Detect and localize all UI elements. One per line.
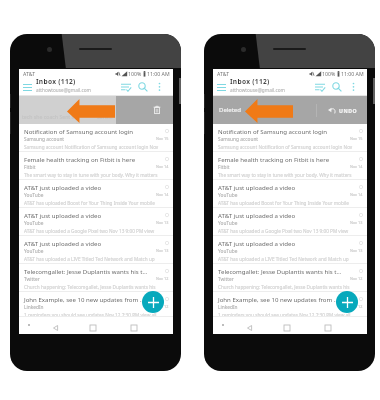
button[interactable]: Open navigation drawer: [19, 78, 36, 96]
staticText: Female health tracking on Fitbit is here: [218, 155, 330, 163]
staticText: AT&T has uploaded a LIVE Titled Ted Netw…: [24, 256, 155, 262]
staticText: The smart way to stay in tune with your …: [218, 172, 352, 178]
button[interactable]: Compose: [336, 291, 358, 313]
staticText: YouTube: [218, 192, 238, 199]
staticText: Twitter: [218, 276, 234, 283]
staticText: LinkedIn: [24, 304, 44, 311]
staticText: atthowtouse@gmail.com: [230, 87, 285, 93]
button[interactable]: Notification of Samsung account login: [19, 124, 173, 152]
staticText: Samsung account Notification of Samsung …: [24, 144, 159, 150]
button[interactable]: Recent apps: [124, 321, 144, 335]
staticText: Samsung account Notification of Samsung …: [218, 144, 353, 150]
staticText: John Example, see 10 new updates from …: [218, 295, 339, 303]
button[interactable]: UNDO: [328, 107, 358, 114]
staticText: AT&T: [23, 70, 36, 77]
staticText: 1 reminders you should see updates Nov 1…: [24, 312, 157, 318]
button[interactable]: More options: [151, 78, 168, 96]
staticText: YouTube: [218, 248, 238, 255]
staticText: AT&T just uploaded a video: [24, 183, 102, 191]
staticText: YouTube: [24, 192, 44, 199]
staticText: AT&T has uploaded Boost for Your Thing I…: [24, 200, 155, 206]
staticText: Notification of Samsung account login: [218, 127, 328, 135]
button[interactable]: Delete: [116, 96, 173, 124]
staticText: Inbox (112): [36, 77, 76, 86]
staticText: 11:00 AM: [341, 70, 364, 77]
staticText: AT&T has uploaded a Google Pixel two Nov…: [24, 228, 155, 234]
button[interactable]: Open navigation drawer: [213, 78, 230, 96]
button[interactable]: AT&T just uploaded a video: [19, 236, 173, 264]
staticText: tech she coach Sent in…: [22, 113, 81, 120]
staticText: Telecomgallet: Jesse Duplantis wants his…: [24, 267, 148, 275]
button[interactable]: Compose: [142, 291, 164, 313]
staticText: Nov 15: [156, 136, 169, 141]
staticText: Female health tracking on Fitbit is here: [24, 155, 136, 163]
button[interactable]: AT&T just uploaded a video: [213, 208, 367, 236]
button[interactable]: More options: [345, 78, 362, 96]
staticText: Twitter: [24, 276, 40, 283]
button[interactable]: Back: [45, 321, 65, 335]
staticText: Fitbit: [218, 164, 230, 171]
staticText: Nov 14: [156, 164, 169, 169]
staticText: Nov 14: [350, 192, 363, 197]
button[interactable]: Back: [239, 321, 259, 335]
button[interactable]: Home: [277, 321, 297, 335]
staticText: Nov 13: [350, 248, 363, 253]
staticText: Fitbit: [24, 164, 36, 171]
staticText: UNDO: [339, 107, 358, 114]
staticText: AT&T just uploaded a video: [218, 183, 296, 191]
staticText: Nov 13: [156, 248, 169, 253]
staticText: 11:00 AM: [147, 70, 170, 77]
staticText: AT&T just uploaded a video: [218, 239, 296, 247]
staticText: Church happening: Telecomgallet, Jesse D…: [24, 284, 156, 290]
staticText: Sens…: [97, 113, 113, 120]
button[interactable]: Telecomgallet: Jesse Duplantis wants his…: [213, 264, 367, 292]
staticText: AT&T: [217, 70, 230, 77]
staticText: AT&T just uploaded a video: [24, 211, 102, 219]
button[interactable]: AT&T just uploaded a video: [213, 180, 367, 208]
button[interactable]: Swipe left to delete: [245, 99, 293, 123]
button[interactable]: Search: [134, 78, 151, 96]
staticText: YouTube: [218, 220, 238, 227]
button[interactable]: Search: [328, 78, 345, 96]
staticText: YouTube: [24, 220, 44, 227]
button[interactable]: Female health tracking on Fitbit is here: [213, 152, 367, 180]
staticText: Deleted: [219, 106, 241, 114]
staticText: Inbox (112): [230, 77, 270, 86]
staticText: AT&T just uploaded a video: [218, 211, 296, 219]
staticText: atthowtouse@gmail.com: [36, 87, 91, 93]
button[interactable]: Sort: [311, 78, 328, 96]
staticText: Telecomgallet: Jesse Duplantis wants his…: [218, 267, 342, 275]
staticText: YouTube: [24, 248, 44, 255]
staticText: The smart way to stay in tune with your …: [24, 172, 158, 178]
staticText: Nov 13: [350, 220, 363, 225]
staticText: John Example, see 10 new updates from …: [24, 295, 145, 303]
button[interactable]: AT&T just uploaded a video: [213, 236, 367, 264]
button[interactable]: Telecomgallet: Jesse Duplantis wants his…: [19, 264, 173, 292]
staticText: AT&T has uploaded a LIVE Titled Ted Netw…: [218, 256, 349, 262]
button[interactable]: Home: [83, 321, 103, 335]
button[interactable]: Recent apps: [318, 321, 338, 335]
button[interactable]: AT&T just uploaded a video: [19, 208, 173, 236]
button[interactable]: Notification of Samsung account login: [213, 124, 367, 152]
button[interactable]: Swipe left to delete: [67, 99, 115, 123]
staticText: Nov 12: [350, 304, 363, 309]
staticText: 1 reminders you should see updates Nov 1…: [218, 312, 351, 318]
staticText: Nov 12: [156, 276, 169, 281]
button[interactable]: John Example, see 10 new updates from …: [19, 292, 173, 320]
staticText: AT&T has uploaded Boost for Your Thing I…: [218, 200, 349, 206]
staticText: Nov 12: [156, 304, 169, 309]
staticText: Nov 13: [156, 220, 169, 225]
staticText: Nov 15: [350, 136, 363, 141]
staticText: Nov 14: [156, 192, 169, 197]
staticText: LinkedIn: [218, 304, 238, 311]
button[interactable]: Sort: [117, 78, 134, 96]
staticText: Nov 12: [350, 276, 363, 281]
staticText: Nov 14: [350, 164, 363, 169]
button[interactable]: Female health tracking on Fitbit is here: [19, 152, 173, 180]
button[interactable]: AT&T just uploaded a video: [19, 180, 173, 208]
staticText: Notification of Samsung account login: [24, 127, 134, 135]
staticText: Samsung account: [218, 136, 259, 143]
button[interactable]: John Example, see 10 new updates from …: [213, 292, 367, 320]
staticText: AT&T has uploaded a Google Pixel two Nov…: [218, 228, 349, 234]
